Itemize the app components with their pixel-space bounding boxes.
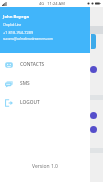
staticText: 4G 11:24 AM: [39, 1, 65, 6]
staticText: Version 1.0: [0, 163, 90, 170]
button[interactable]: Logout: [0, 93, 90, 112]
staticText: success@calmelessstreamers.com: [3, 37, 53, 41]
button[interactable]: SMS: [0, 74, 90, 93]
staticText: John Boyega: [3, 14, 29, 20]
other: SMS: [5, 80, 13, 88]
staticText: CONTACTS: [20, 61, 45, 68]
staticText: SMS: [20, 80, 30, 87]
other: Contacts: [5, 61, 13, 69]
staticText: +1 818-764-7289: [3, 30, 34, 35]
staticText: LOGOUT: [20, 99, 40, 106]
staticText: Choplak Line: [3, 23, 22, 27]
button[interactable]: Contacts: [0, 55, 90, 74]
other: Logout: [5, 99, 13, 107]
